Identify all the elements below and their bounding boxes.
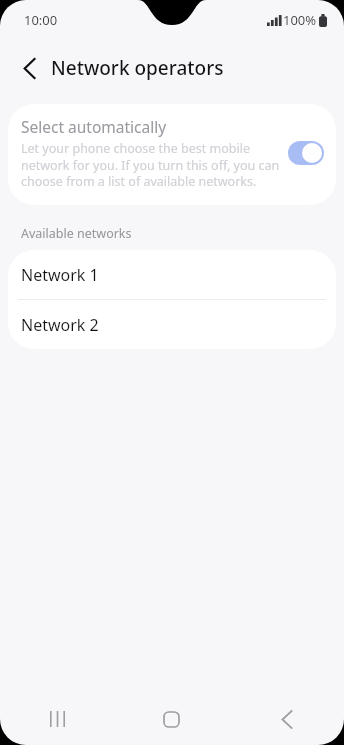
staticText: Network operators — [51, 55, 224, 81]
button[interactable]: Recents — [0, 693, 114, 745]
button[interactable]: Select automatically toggle — [288, 141, 324, 165]
button[interactable]: Home — [114, 693, 229, 745]
button[interactable]: Select automatically — [8, 104, 336, 205]
button[interactable]: Network 1 — [8, 250, 336, 299]
button[interactable]: Network 2 — [8, 300, 336, 349]
button[interactable]: Back — [229, 693, 344, 745]
staticText: Available networks — [21, 225, 132, 242]
staticText: Let your phone choose the best mobile ne… — [21, 140, 280, 189]
staticText: Network 2 — [21, 314, 99, 336]
button[interactable]: Back — [12, 50, 48, 86]
staticText: 100% — [283, 11, 317, 29]
staticText: Select automatically — [21, 116, 167, 137]
staticText: 10:00 — [24, 11, 58, 29]
staticText: Network 1 — [21, 264, 99, 286]
